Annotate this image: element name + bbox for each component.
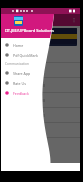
staticText: Rate Us xyxy=(13,81,26,86)
button[interactable] xyxy=(1,48,80,62)
button[interactable] xyxy=(1,78,80,92)
staticText: Pdf QuickMark xyxy=(13,53,38,58)
staticText: IIT-JEE/UPBoard Solutions xyxy=(5,28,54,33)
button[interactable] xyxy=(1,93,80,107)
button[interactable]: Pdf QuickMark xyxy=(1,50,80,60)
staticText: Communication xyxy=(5,62,29,66)
staticText: Feedback xyxy=(13,91,29,96)
button[interactable] xyxy=(1,108,80,122)
button[interactable]: More options xyxy=(71,17,77,23)
button[interactable]: Feedback xyxy=(1,88,80,98)
button[interactable]: Share App xyxy=(1,68,80,78)
button[interactable]: Rate Us xyxy=(1,78,80,88)
button[interactable] xyxy=(1,63,80,77)
staticText: Share App xyxy=(13,71,31,76)
staticText: Home xyxy=(13,43,24,48)
button[interactable]: Home xyxy=(1,40,80,50)
button[interactable] xyxy=(1,123,80,137)
